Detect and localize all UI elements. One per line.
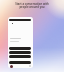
staticText: Start a conversation with people around … (0, 2, 64, 9)
